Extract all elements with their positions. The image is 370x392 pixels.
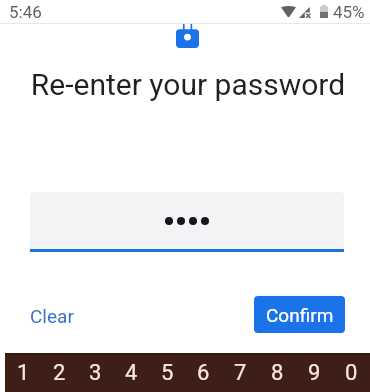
staticText: 2 bbox=[53, 360, 66, 386]
staticText: 7 bbox=[234, 360, 247, 386]
button[interactable]: 6 bbox=[185, 353, 222, 392]
staticText: 6 bbox=[197, 360, 210, 386]
button[interactable]: Clear bbox=[22, 298, 82, 334]
staticText: 5:46 bbox=[9, 2, 42, 22]
staticText: 8 bbox=[271, 360, 284, 386]
button[interactable]: 4 bbox=[113, 353, 149, 392]
button[interactable]: 2 bbox=[41, 353, 77, 392]
staticText: 45% bbox=[333, 2, 365, 22]
staticText: 5 bbox=[161, 360, 174, 386]
staticText: 9 bbox=[308, 360, 321, 386]
other: Work profile bbox=[176, 24, 199, 48]
staticText: 4 bbox=[125, 360, 138, 386]
button[interactable]: 9 bbox=[296, 353, 333, 392]
other: Mobile signal bbox=[299, 7, 312, 18]
staticText: Clear bbox=[30, 305, 74, 327]
staticText: Confirm bbox=[266, 304, 334, 326]
button[interactable]: 5 bbox=[149, 353, 185, 392]
button[interactable]: 3 bbox=[77, 353, 113, 392]
staticText: 3 bbox=[89, 360, 102, 386]
staticText: Re-enter your password bbox=[15, 67, 361, 102]
button[interactable]: 8 bbox=[259, 353, 296, 392]
button[interactable]: 1 bbox=[5, 353, 41, 392]
staticText: 1 bbox=[17, 360, 30, 386]
button[interactable]: 7 bbox=[222, 353, 259, 392]
other: Battery bbox=[320, 5, 328, 18]
button[interactable]: Confirm bbox=[254, 296, 345, 333]
other: Wi-Fi bbox=[281, 6, 296, 17]
staticText: 0 bbox=[345, 360, 358, 386]
button[interactable]: Password field bbox=[30, 192, 344, 249]
button[interactable]: 0 bbox=[333, 353, 370, 392]
